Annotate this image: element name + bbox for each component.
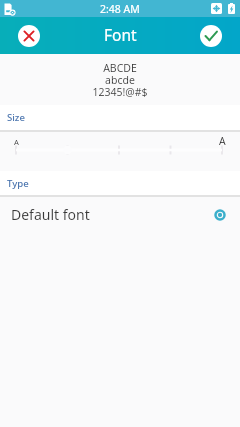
button[interactable]: Default font	[0, 197, 240, 233]
button[interactable]: Cancel	[18, 25, 40, 47]
staticText: 2:48 AM	[100, 2, 140, 16]
staticText: Type	[7, 177, 29, 190]
staticText: Size	[7, 111, 25, 124]
button[interactable]: Confirm	[200, 25, 222, 47]
staticText: Default font	[11, 205, 90, 224]
button[interactable]: Type	[0, 171, 240, 195]
staticText: A	[219, 134, 226, 148]
button[interactable]: Font size	[0, 131, 240, 171]
button[interactable]: Size	[0, 105, 240, 130]
staticText: A	[14, 137, 19, 147]
staticText: ABCDE abcde 12345!@#$	[92, 61, 148, 99]
staticText: Font	[104, 24, 137, 45]
